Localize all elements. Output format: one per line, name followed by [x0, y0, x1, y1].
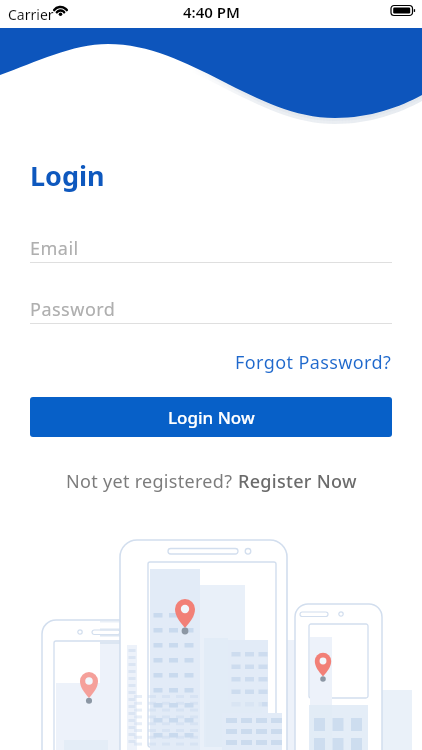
staticText: Password [30, 297, 116, 322]
button[interactable]: Not yet registered? [66, 469, 357, 494]
staticText: Forgot Password? [235, 350, 392, 375]
staticText: Login [30, 157, 105, 194]
staticText: Carrier [8, 5, 54, 24]
staticText: Register Now [238, 469, 357, 494]
button[interactable]: Password [30, 297, 392, 325]
staticText: Not yet registered? [66, 469, 238, 494]
staticText: 4:40 PM [183, 2, 240, 22]
button[interactable]: Forgot Password? [235, 350, 392, 375]
button[interactable]: Login Now [30, 397, 392, 437]
staticText: Login Now [168, 406, 255, 429]
staticText: Email [30, 236, 79, 261]
button[interactable]: Email [30, 236, 392, 264]
